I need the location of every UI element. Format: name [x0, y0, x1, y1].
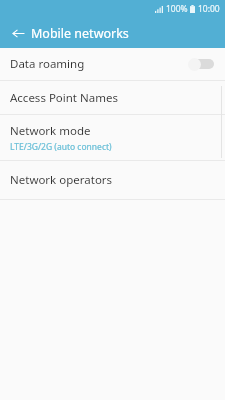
button[interactable]: Back	[7, 22, 29, 44]
staticText: Mobile networks	[31, 25, 129, 42]
staticText: LTE/3G/2G (auto connect)	[10, 141, 112, 153]
button[interactable]: Data roaming switch, off	[188, 56, 214, 72]
staticText: Network mode	[10, 123, 91, 139]
button[interactable]: Network operators	[0, 161, 225, 199]
staticText: 10:00	[198, 3, 220, 15]
staticText: Network operators	[10, 172, 113, 188]
staticText: 100%	[166, 3, 188, 15]
button[interactable]: Access Point Names	[0, 81, 225, 114]
staticText: Access Point Names	[10, 90, 118, 106]
button[interactable]: Data roaming	[0, 48, 225, 80]
staticText: Data roaming	[10, 56, 85, 72]
button[interactable]: Network mode	[0, 115, 225, 160]
